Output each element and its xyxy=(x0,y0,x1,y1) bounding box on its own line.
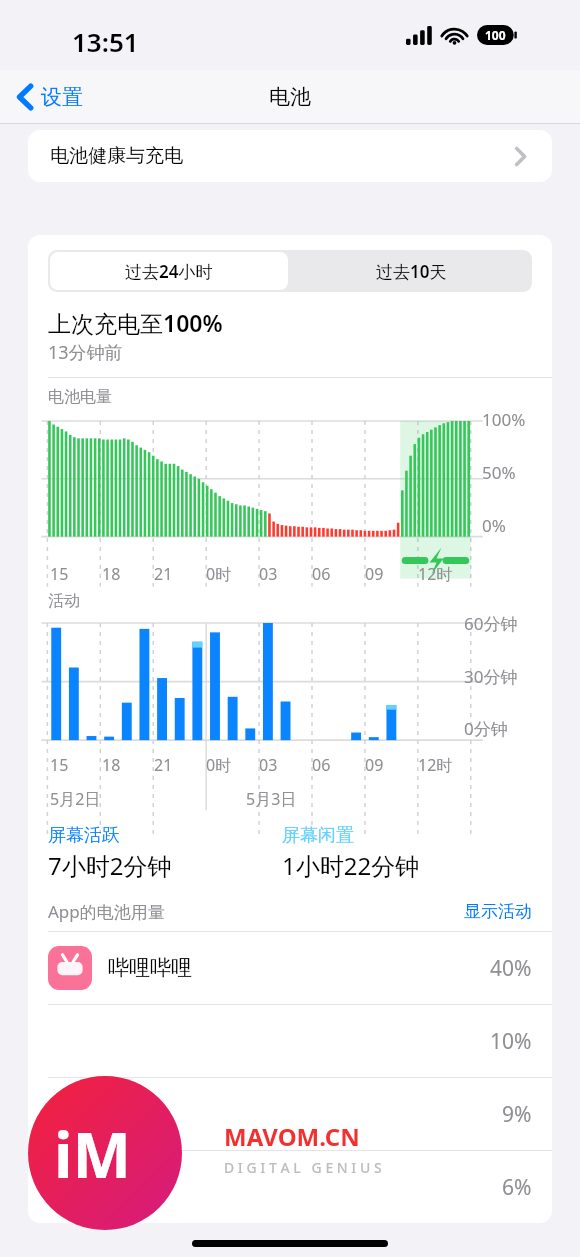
staticText: 100% xyxy=(482,408,526,431)
staticText: 30分钟 xyxy=(464,665,518,688)
staticText: 电池 xyxy=(269,84,311,110)
staticText: 微信 xyxy=(108,1174,150,1200)
staticText: 06 xyxy=(312,754,331,776)
staticText: 03 xyxy=(259,754,278,776)
staticText: iM xyxy=(54,1112,132,1196)
staticText: 09 xyxy=(365,754,384,776)
staticText: 40% xyxy=(490,954,532,983)
staticText: 60分钟 xyxy=(464,612,518,635)
staticText: 15 xyxy=(50,563,69,585)
staticText: 过去24小时 xyxy=(125,260,213,283)
staticText: 活动 xyxy=(48,591,80,611)
staticText: 18 xyxy=(102,563,121,585)
button[interactable]: 显示活动 xyxy=(464,901,532,922)
staticText: 0时 xyxy=(206,563,232,585)
button[interactable]: 过去24小时 xyxy=(50,252,288,290)
staticText: 显示活动 xyxy=(464,901,532,922)
staticText: 9% xyxy=(502,1100,532,1129)
staticText: 上次充电至100% xyxy=(48,307,223,338)
staticText: 0时 xyxy=(206,754,232,776)
staticText: 1小时22分钟 xyxy=(282,849,420,882)
staticText: 12时 xyxy=(418,563,453,585)
staticText: 屏幕闲置 xyxy=(282,824,354,847)
staticText: 06 xyxy=(312,563,331,585)
button[interactable]: 电池健康与充电 xyxy=(28,130,552,182)
staticText: 6% xyxy=(502,1173,532,1202)
staticText: 0% xyxy=(482,514,506,537)
staticText: 21 xyxy=(154,563,173,585)
button[interactable]: 哔哩哔哩 xyxy=(28,932,552,1004)
staticText: App的电池用量 xyxy=(48,900,165,923)
staticText: 哔哩哔哩 xyxy=(108,955,192,981)
button[interactable]: 10% xyxy=(28,1005,552,1077)
staticText: 电池电量 xyxy=(48,387,112,407)
staticText: 7小时2分钟 xyxy=(48,849,172,882)
staticText: 设置 xyxy=(41,84,83,110)
staticText: 21 xyxy=(154,754,173,776)
staticText: 10% xyxy=(490,1027,532,1056)
staticText: D I G I T A L G E N I U S xyxy=(224,1158,382,1177)
other: More xyxy=(515,147,526,166)
staticText: 12时 xyxy=(418,754,453,776)
staticText: 13:51 xyxy=(72,24,139,59)
staticText: 5月3日 xyxy=(246,788,297,810)
staticText: 09 xyxy=(365,563,384,585)
staticText: 13分钟前 xyxy=(48,340,123,365)
button[interactable]: 微信 xyxy=(28,1151,552,1223)
staticText: 50% xyxy=(482,461,516,484)
staticText: 过去10天 xyxy=(376,260,447,283)
staticText: 100 xyxy=(485,27,506,43)
staticText: 5月2日 xyxy=(50,788,101,810)
staticText: 18 xyxy=(102,754,121,776)
staticText: 0分钟 xyxy=(464,717,508,740)
staticText: 03 xyxy=(259,563,278,585)
staticText: 电池健康与充电 xyxy=(50,144,183,168)
button[interactable]: 9% xyxy=(28,1078,552,1150)
staticText: 屏幕活跃 xyxy=(48,824,120,847)
staticText: MAVOM.CN xyxy=(224,1120,360,1153)
button[interactable]: 设置 xyxy=(12,79,89,115)
button[interactable]: 过去10天 xyxy=(290,250,532,292)
staticText: 15 xyxy=(50,754,69,776)
